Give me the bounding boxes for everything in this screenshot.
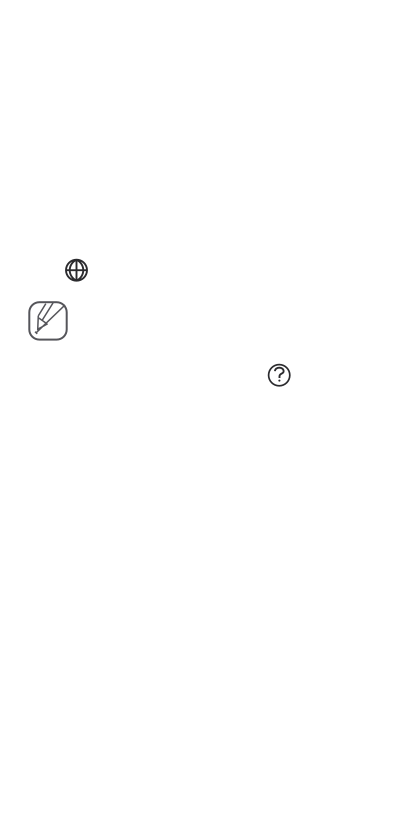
button[interactable]: Language [66,260,87,281]
button[interactable]: Help [268,364,290,386]
button[interactable]: Compose [29,302,67,340]
